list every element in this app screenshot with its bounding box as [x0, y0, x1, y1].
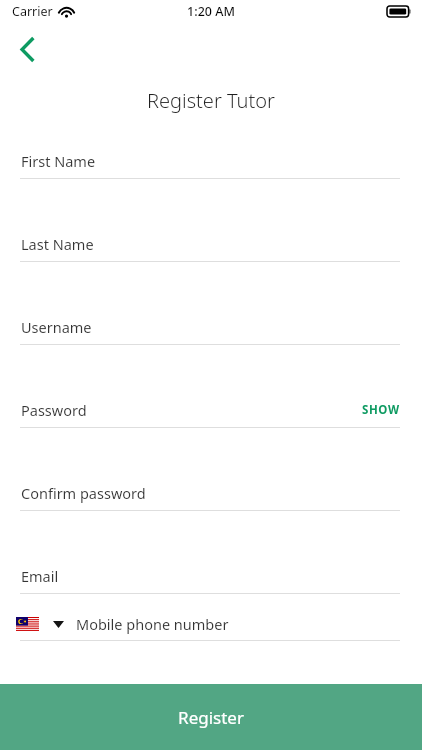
- button[interactable]: Back: [0, 22, 54, 76]
- staticText: SHOW: [362, 402, 400, 418]
- button[interactable]: Register: [0, 684, 422, 750]
- button[interactable]: First Name: [0, 151, 422, 179]
- staticText: 1:20 AM: [187, 3, 235, 20]
- button[interactable]: Email: [0, 566, 422, 594]
- staticText: Carrier: [12, 3, 53, 20]
- staticText: Username: [21, 317, 92, 337]
- button[interactable]: SHOW: [362, 402, 400, 418]
- staticText: Last Name: [21, 234, 94, 254]
- button[interactable]: Password: [0, 400, 422, 428]
- button[interactable]: Confirm password: [0, 483, 422, 511]
- button[interactable]: Username: [0, 317, 422, 345]
- button[interactable]: Last Name: [0, 234, 422, 262]
- staticText: Register Tutor: [147, 87, 275, 114]
- staticText: First Name: [21, 151, 96, 171]
- staticText: Password: [21, 400, 87, 420]
- staticText: Register: [178, 706, 244, 729]
- staticText: Mobile phone number: [76, 614, 229, 634]
- staticText: Email: [21, 566, 59, 586]
- button[interactable]: Mobile phone number: [0, 614, 422, 641]
- staticText: Confirm password: [21, 483, 146, 503]
